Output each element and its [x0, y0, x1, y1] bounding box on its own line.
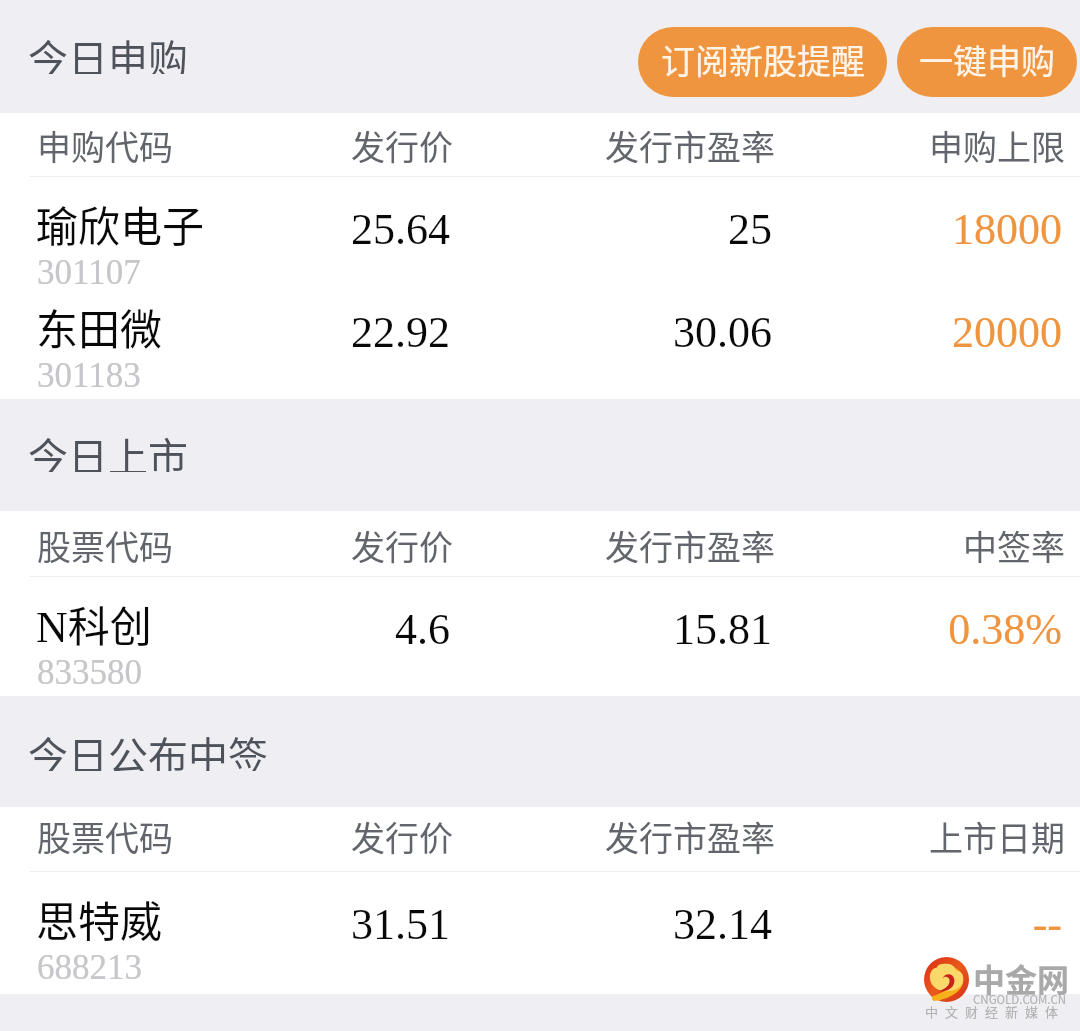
- staticText: 32.14: [352, 900, 772, 949]
- staticText: 发行市盈率: [355, 121, 775, 170]
- staticText: 股票代码: [37, 812, 173, 861]
- staticText: 中文财经新媒体: [925, 1002, 1066, 1021]
- staticText: 688213: [37, 948, 142, 987]
- staticText: 股票代码: [37, 521, 173, 570]
- button[interactable]: 今日上市: [28, 426, 196, 472]
- staticText: 4.6: [30, 605, 450, 654]
- staticText: CNGOLD.COM.CN: [973, 991, 1067, 1008]
- staticText: 中签率: [645, 521, 1065, 570]
- staticText: 发行市盈率: [355, 521, 775, 570]
- button[interactable]: 瑜欣电子: [0, 176, 1080, 279]
- staticText: 瑜欣电子: [36, 193, 205, 254]
- button[interactable]: 今日公布中签: [28, 725, 276, 771]
- staticText: 18000: [642, 205, 1062, 254]
- staticText: 发行价: [33, 812, 453, 861]
- staticText: 0.38%: [642, 605, 1062, 654]
- staticText: 30.06: [352, 308, 772, 357]
- staticText: 15.81: [352, 605, 772, 654]
- staticText: 301107: [37, 253, 141, 292]
- staticText: 301183: [37, 356, 141, 395]
- button[interactable]: 东田微: [0, 279, 1080, 382]
- staticText: 发行价: [33, 521, 453, 570]
- staticText: 833580: [37, 653, 142, 692]
- staticText: 上市日期: [645, 812, 1065, 861]
- staticText: 25.64: [30, 205, 450, 254]
- staticText: 发行市盈率: [355, 812, 775, 861]
- staticText: 订阅新股提醒: [661, 35, 865, 84]
- staticText: 今日申购: [28, 28, 188, 74]
- staticText: 申购上限: [645, 121, 1065, 170]
- staticText: 发行价: [33, 121, 453, 170]
- staticText: 申购代码: [37, 121, 173, 170]
- staticText: 中金网: [973, 955, 1070, 1001]
- button[interactable]: 今日申购: [28, 28, 196, 74]
- staticText: 25: [352, 205, 772, 254]
- staticText: N科创: [36, 593, 152, 654]
- staticText: --: [642, 900, 1062, 949]
- button[interactable]: 思特威: [0, 871, 1080, 974]
- staticText: 一键申购: [919, 35, 1055, 84]
- staticText: 31.51: [30, 900, 450, 949]
- other: 中金网 logo: [924, 957, 969, 1002]
- button[interactable]: 一键申购: [897, 27, 1077, 97]
- staticText: 今日公布中签: [28, 725, 268, 771]
- button[interactable]: 订阅新股提醒: [638, 27, 887, 97]
- staticText: 22.92: [30, 308, 450, 357]
- staticText: 东田微: [36, 296, 163, 357]
- button[interactable]: N科创: [0, 576, 1080, 679]
- staticText: 20000: [642, 308, 1062, 357]
- staticText: 今日上市: [28, 426, 188, 472]
- staticText: 思特威: [36, 888, 163, 949]
